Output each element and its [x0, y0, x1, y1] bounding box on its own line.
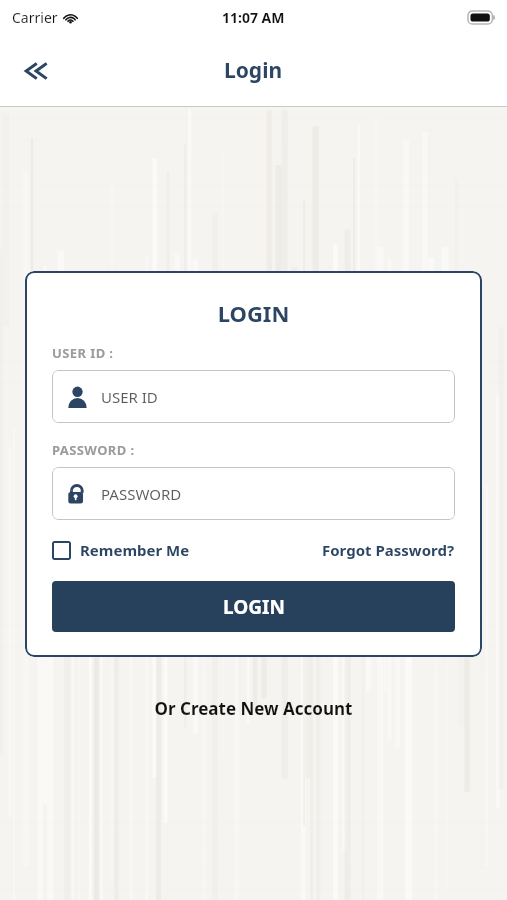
button[interactable]: USER ID: [52, 370, 455, 423]
button[interactable]: Remember Me: [52, 537, 190, 563]
staticText: Login: [224, 56, 283, 85]
button[interactable]: LOGIN: [52, 581, 455, 632]
button[interactable]: Or Create New Account: [0, 693, 507, 724]
staticText: LOGIN: [223, 594, 285, 620]
staticText: Carrier: [12, 8, 58, 27]
staticText: USER ID :: [52, 344, 114, 362]
button[interactable]: Forgot Password?: [322, 537, 455, 563]
staticText: 11:07 AM: [222, 8, 285, 27]
button[interactable]: PASSWORD: [52, 467, 455, 520]
staticText: PASSWORD :: [52, 441, 135, 459]
staticText: Remember Me: [80, 540, 190, 560]
staticText: PASSWORD: [101, 484, 182, 504]
button[interactable]: Back: [10, 46, 60, 96]
staticText: USER ID: [101, 387, 158, 407]
staticText: LOGIN: [52, 298, 455, 328]
